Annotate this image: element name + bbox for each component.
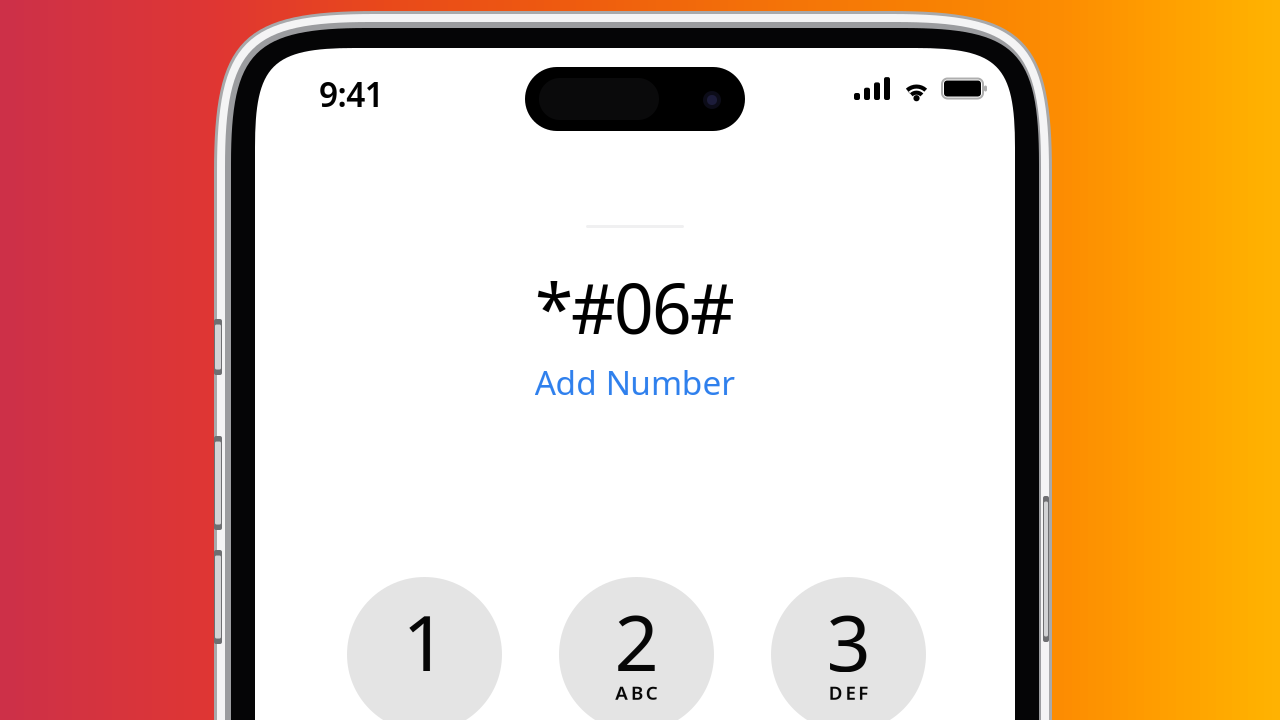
staticText: Add Number: [535, 360, 735, 404]
staticText: 9:41: [319, 72, 384, 116]
staticText: DEF: [829, 680, 868, 705]
staticText: 2: [614, 590, 658, 693]
button[interactable]: 2: [559, 577, 714, 720]
staticText: 1: [402, 590, 446, 693]
button[interactable]: 1: [347, 577, 502, 720]
staticText: 3: [826, 590, 870, 693]
button[interactable]: Add Number: [535, 360, 735, 404]
staticText: *#06#: [535, 261, 735, 353]
staticText: ABC: [615, 680, 658, 705]
button[interactable]: 3: [771, 577, 926, 720]
